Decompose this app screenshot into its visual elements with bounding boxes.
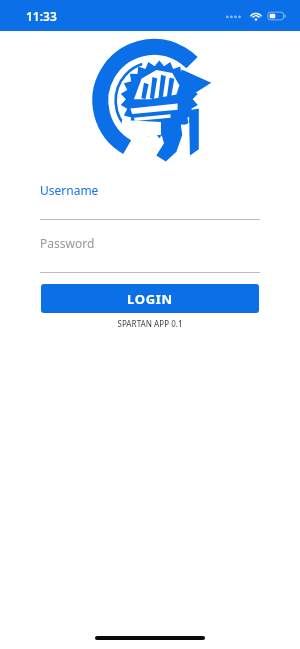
staticText: Username: [40, 182, 99, 198]
staticText: Password: [40, 235, 95, 251]
button[interactable]: LOGIN: [41, 284, 259, 313]
other: Spartan app logo: [95, 42, 213, 164]
staticText: 11:33: [26, 8, 57, 24]
button[interactable]: Password: [40, 235, 260, 273]
button[interactable]: Username: [40, 182, 260, 220]
staticText: SPARTAN APP 0.1: [117, 318, 183, 329]
staticText: LOGIN: [127, 290, 173, 308]
